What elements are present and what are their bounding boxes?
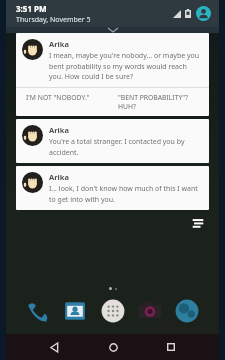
staticText: Arika <box>49 172 69 182</box>
button[interactable]: User profile <box>196 6 211 21</box>
button[interactable]: Camera <box>137 298 163 324</box>
button[interactable]: Arika <box>16 33 209 116</box>
button[interactable]: All apps <box>100 298 126 324</box>
button[interactable]: Recents <box>160 336 182 358</box>
staticText: Arika <box>49 39 69 49</box>
staticText: 3:51 PM <box>16 3 47 14</box>
staticText: You're a total stranger. I contacted you… <box>49 137 201 157</box>
button[interactable]: Phone <box>25 298 51 324</box>
button[interactable]: Browser <box>174 298 200 324</box>
button[interactable]: Home <box>102 336 124 358</box>
staticText: I'M NOT "NOBODY." <box>26 93 90 102</box>
button[interactable]: "BENT PROBABILITY"? HUH? <box>112 88 205 116</box>
staticText: I... look, I don't know how much of this… <box>49 184 201 204</box>
button[interactable]: Back <box>43 336 65 358</box>
button[interactable]: Arika <box>16 119 209 163</box>
staticText: I mean, maybe you're nobody... or maybe … <box>49 51 201 81</box>
button[interactable]: Contacts <box>62 298 88 324</box>
button[interactable]: I'M NOT "NOBODY." <box>20 88 112 107</box>
staticText: Thursday, November 5 <box>16 15 91 25</box>
staticText: "BENT PROBABILITY"? HUH? <box>118 93 199 111</box>
button[interactable]: Arika <box>16 166 209 210</box>
staticText: Arika <box>49 125 69 135</box>
button[interactable]: Notification settings <box>191 216 205 230</box>
